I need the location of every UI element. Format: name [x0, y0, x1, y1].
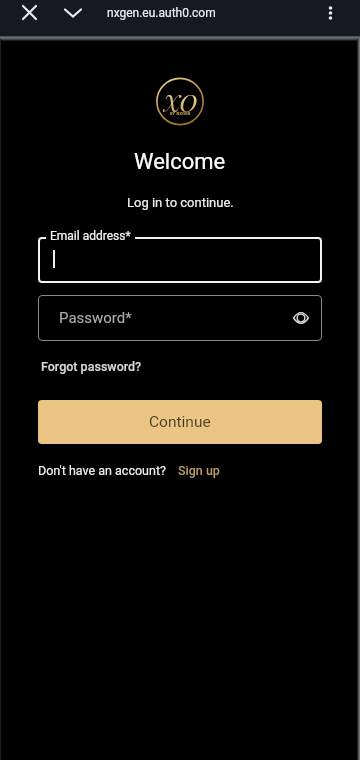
button[interactable] — [288, 305, 314, 331]
button[interactable] — [17, 0, 41, 25]
button[interactable]: Continue — [38, 400, 322, 444]
staticText: Password* — [59, 309, 132, 327]
button[interactable] — [61, 0, 85, 25]
staticText: Email address* — [50, 229, 131, 243]
staticText: Continue — [149, 413, 211, 431]
staticText: XO — [163, 85, 197, 115]
button[interactable]: Password* — [38, 295, 322, 341]
staticText: Log in to continue. — [127, 195, 234, 210]
button[interactable] — [318, 0, 343, 25]
staticText: BY NXGEN — [170, 111, 191, 116]
staticText: Sign up — [178, 463, 220, 478]
button[interactable]: Forgot password? — [39, 357, 142, 375]
staticText: Forgot password? — [41, 359, 142, 374]
staticText: Welcome — [134, 149, 226, 175]
staticText: nxgen.eu.auth0.com — [107, 6, 216, 20]
button[interactable]: Sign up — [178, 463, 220, 478]
button[interactable] — [38, 237, 322, 283]
staticText: Don't have an account? — [38, 463, 166, 478]
